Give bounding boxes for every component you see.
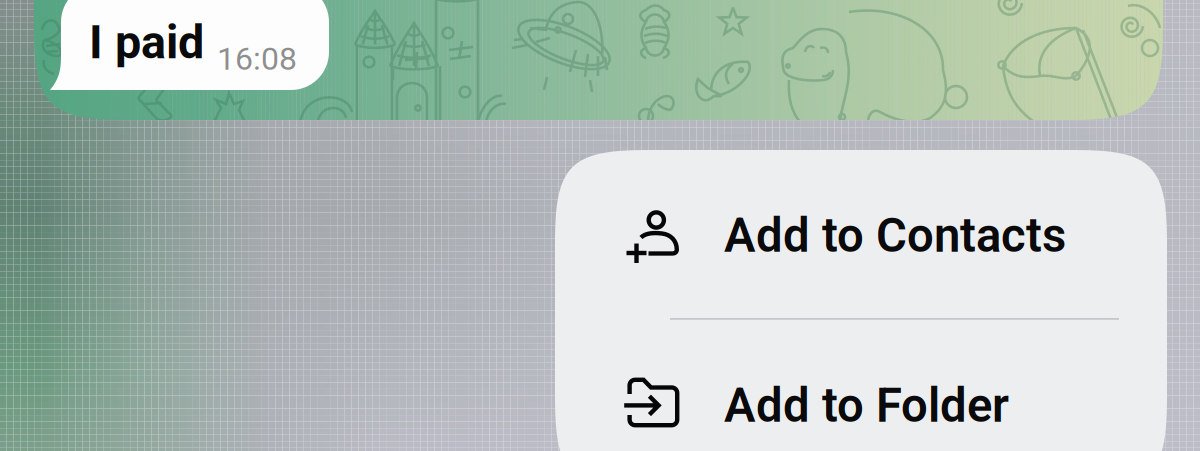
button[interactable]: Add to Folder — [555, 320, 1167, 451]
staticText: Add to Contacts — [724, 208, 1066, 263]
button[interactable]: Add to Contacts — [555, 150, 1167, 320]
staticText: 16:08 — [217, 40, 297, 77]
staticText: Add to Folder — [724, 378, 1009, 433]
staticText: I paid — [89, 15, 204, 70]
